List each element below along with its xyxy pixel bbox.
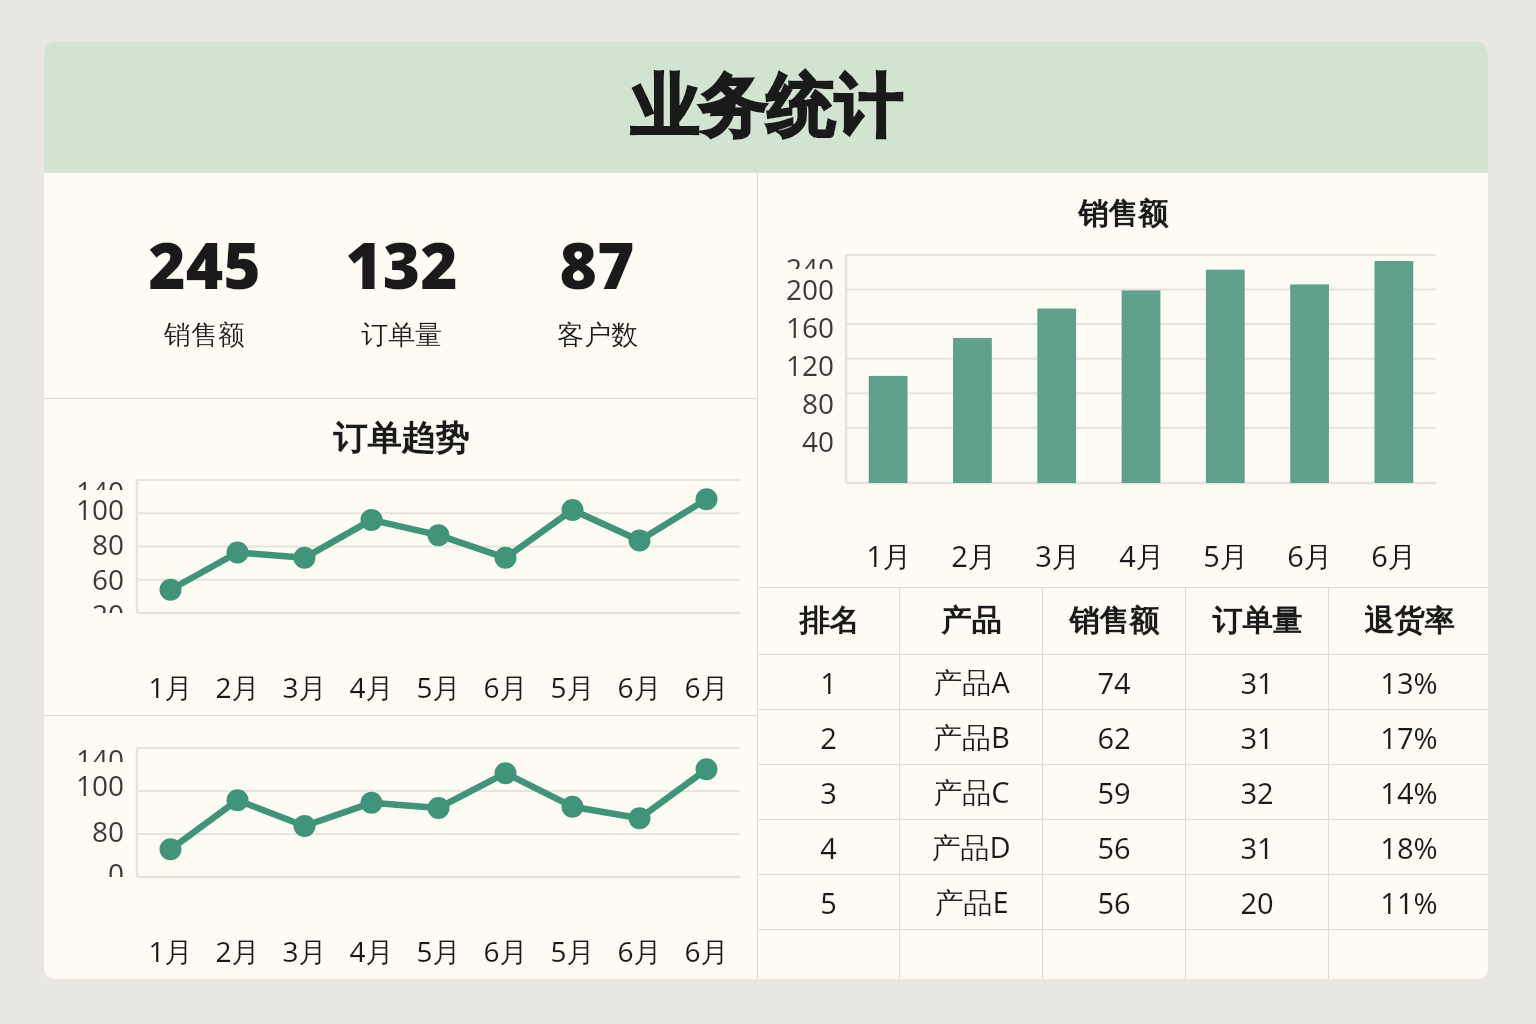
staticText: 6月 <box>1287 536 1333 576</box>
staticText: 100 <box>75 490 124 525</box>
button[interactable]: 4 <box>758 820 1488 874</box>
staticText: 4月 <box>349 932 394 970</box>
staticText: 74 <box>1097 663 1131 702</box>
staticText: 120 <box>785 346 834 384</box>
button[interactable]: 1 <box>758 655 1488 709</box>
button[interactable]: 2 <box>758 710 1488 764</box>
staticText: 31 <box>1240 828 1274 867</box>
staticText: 40 <box>801 422 834 460</box>
staticText: 3月 <box>282 668 327 706</box>
staticText: 5 <box>820 883 837 922</box>
staticText: 31 <box>1240 663 1274 702</box>
staticText: 56 <box>1097 883 1131 922</box>
staticText: 80 <box>91 812 124 850</box>
button[interactable]: 排名 <box>758 588 1488 654</box>
button[interactable]: 5 <box>758 875 1488 929</box>
staticText: 240 <box>785 249 834 269</box>
staticText: 订单量 <box>361 318 442 352</box>
staticText: 80 <box>801 384 834 422</box>
staticText: 3 <box>820 773 837 812</box>
staticText: 5月 <box>550 932 595 970</box>
staticText: 2月 <box>215 932 260 970</box>
staticText: 4 <box>820 828 837 867</box>
staticText: 订单量 <box>1212 602 1302 640</box>
staticText: 32 <box>1240 773 1274 812</box>
staticText: 1月 <box>148 932 193 970</box>
staticText: 59 <box>1097 773 1131 812</box>
staticText: 业务统计 <box>630 65 902 151</box>
staticText: 1 <box>820 663 837 702</box>
staticText: 6月 <box>483 932 528 970</box>
staticText: 6月 <box>617 932 662 970</box>
staticText: 80 <box>91 525 124 560</box>
staticText: 订单趋势 <box>333 417 469 460</box>
staticText: 1月 <box>866 536 912 576</box>
button[interactable]: 3 <box>758 765 1488 819</box>
staticText: 0 <box>107 854 124 877</box>
staticText: 6月 <box>617 668 662 706</box>
staticText: 18% <box>1380 828 1438 867</box>
staticText: 140 <box>75 740 124 762</box>
staticText: 245 <box>148 221 261 308</box>
staticText: 62 <box>1097 718 1131 757</box>
staticText: 销售额 <box>1078 195 1168 233</box>
staticText: 产品 <box>941 602 1001 640</box>
staticText: 60 <box>91 560 124 595</box>
staticText: 31 <box>1240 718 1274 757</box>
staticText: 产品E <box>934 882 1009 922</box>
button[interactable]: 销售额 <box>758 173 1488 587</box>
staticText: 销售额 <box>1069 602 1159 640</box>
staticText: 1月 <box>148 668 193 706</box>
staticText: 销售额 <box>164 318 245 352</box>
staticText: 11% <box>1380 883 1438 922</box>
staticText: 排名 <box>799 602 859 640</box>
staticText: 5月 <box>416 668 461 706</box>
staticText: 132 <box>345 221 458 308</box>
staticText: 20 <box>1240 883 1274 922</box>
staticText: 2 <box>820 718 837 757</box>
staticText: 2月 <box>951 536 997 576</box>
staticText: 3月 <box>1035 536 1081 576</box>
staticText: 6月 <box>483 668 528 706</box>
button[interactable]: 245 <box>106 221 303 352</box>
staticText: 140 <box>75 472 124 490</box>
button[interactable]: 87 <box>499 221 695 352</box>
staticText: 退货率 <box>1364 602 1454 640</box>
staticText: 2月 <box>215 668 260 706</box>
staticText: 56 <box>1097 828 1131 867</box>
button[interactable]: 140 <box>44 716 757 979</box>
staticText: 17% <box>1380 718 1438 757</box>
staticText: 产品A <box>933 662 1010 702</box>
staticText: 3月 <box>282 932 327 970</box>
staticText: 4月 <box>349 668 394 706</box>
button[interactable]: 132 <box>303 221 499 352</box>
staticText: 5月 <box>1203 536 1249 576</box>
staticText: 6月 <box>1371 536 1417 576</box>
staticText: 6月 <box>684 932 729 970</box>
staticText: 20 <box>91 595 124 613</box>
staticText: 200 <box>785 270 834 308</box>
staticText: 14% <box>1380 773 1438 812</box>
staticText: 160 <box>785 308 834 346</box>
staticText: 客户数 <box>557 318 638 352</box>
staticText: 100 <box>75 766 124 804</box>
staticText: 87 <box>559 221 635 308</box>
staticText: 5月 <box>416 932 461 970</box>
staticText: 6月 <box>684 668 729 706</box>
staticText: 5月 <box>550 668 595 706</box>
staticText: 13% <box>1380 663 1438 702</box>
staticText: 4月 <box>1119 536 1165 576</box>
button[interactable]: 订单趋势 <box>44 399 757 715</box>
staticText: 产品D <box>931 827 1011 867</box>
staticText: 产品B <box>933 717 1010 757</box>
staticText: 产品C <box>933 772 1010 812</box>
